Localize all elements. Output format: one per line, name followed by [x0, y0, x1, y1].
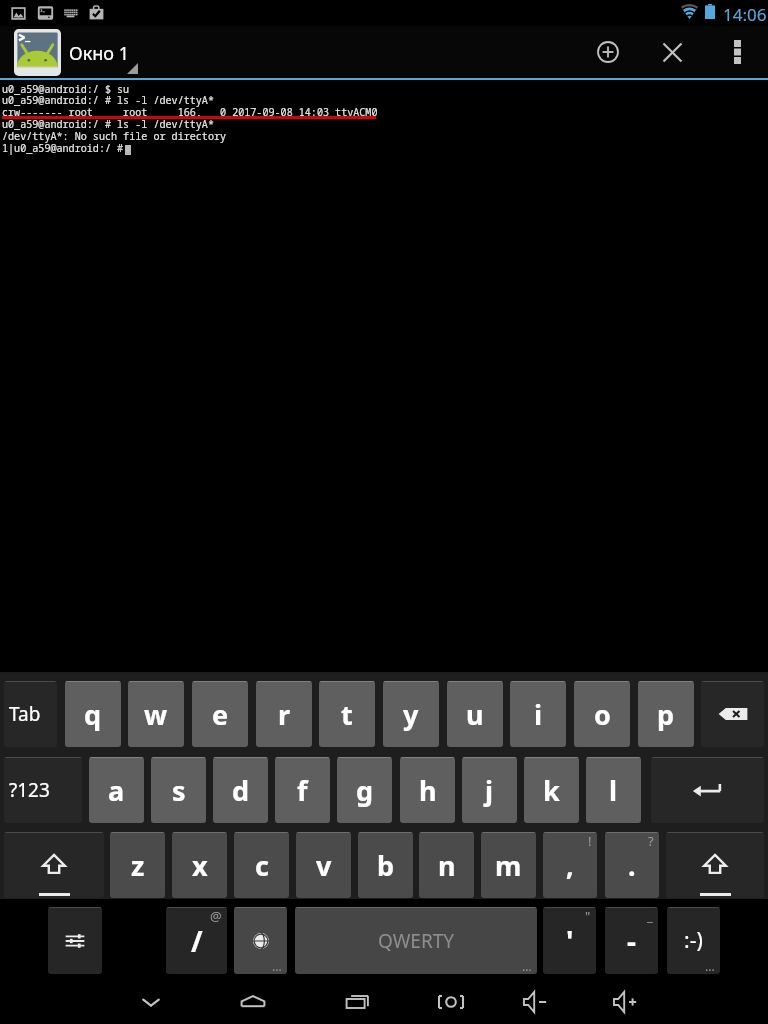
staticText: m — [495, 847, 522, 884]
staticText: l — [609, 772, 618, 809]
staticText: ? — [648, 832, 654, 850]
staticText: p — [657, 696, 675, 733]
button[interactable]: d — [213, 757, 268, 823]
button[interactable]: Volume down — [502, 980, 570, 1024]
button[interactable]: . — [605, 832, 659, 898]
staticText: z — [131, 847, 145, 884]
staticText: j — [485, 772, 494, 809]
button[interactable]: j — [462, 757, 517, 823]
button[interactable]: t — [319, 681, 375, 747]
button[interactable]: shift — [4, 832, 104, 898]
button[interactable]: a — [89, 757, 144, 823]
button[interactable]: h — [400, 757, 455, 823]
staticText: f — [297, 772, 308, 809]
staticText: x — [192, 847, 208, 884]
staticText: ' — [566, 922, 574, 960]
button[interactable]: r — [256, 681, 312, 747]
button[interactable]: New window — [580, 26, 636, 78]
staticText: 14:06 — [723, 3, 767, 26]
button[interactable]: :-) — [667, 907, 720, 974]
staticText: ! — [588, 832, 592, 850]
staticText: t — [341, 696, 353, 733]
button[interactable]: c — [234, 832, 289, 898]
button[interactable]: Recents — [324, 980, 392, 1024]
staticText: QWERTY — [378, 928, 455, 954]
staticText: q — [84, 696, 102, 733]
staticText: ... — [705, 958, 715, 974]
button[interactable]: v — [296, 832, 351, 898]
staticText: v — [316, 847, 332, 884]
staticText: @ — [210, 907, 222, 925]
staticText: w — [144, 696, 168, 733]
button[interactable]: ' — [543, 907, 596, 974]
staticText: ... — [522, 958, 532, 974]
button[interactable]: n — [419, 832, 474, 898]
button[interactable]: Close window — [644, 26, 700, 78]
button[interactable]: u0_a59@android:/ $ su u0_a59@android:/ #… — [0, 80, 768, 672]
button[interactable]: - — [605, 907, 658, 974]
staticText: / — [191, 922, 203, 960]
button[interactable]: w — [128, 681, 184, 747]
staticText: d — [232, 772, 250, 809]
button[interactable]: del — [701, 681, 764, 747]
button[interactable]: i — [510, 681, 566, 747]
button[interactable]: k — [524, 757, 579, 823]
staticText: r — [278, 696, 291, 733]
button[interactable]: QWERTY — [295, 907, 537, 974]
staticText: ?123 — [9, 777, 50, 803]
button[interactable]: Tab — [4, 681, 57, 747]
staticText: y — [403, 696, 419, 733]
button[interactable]: g — [337, 757, 392, 823]
button[interactable]: ?123 — [4, 757, 82, 823]
button[interactable]: , — [543, 832, 597, 898]
staticText: h — [419, 772, 437, 809]
staticText: - — [627, 922, 636, 960]
button[interactable]: u — [447, 681, 503, 747]
staticText: s — [172, 772, 186, 809]
staticText: u0_a59@android:/ $ su u0_a59@android:/ #… — [2, 82, 378, 155]
staticText: :-) — [684, 926, 703, 955]
staticText: Окно 1 — [69, 41, 129, 66]
staticText: Tab — [9, 701, 41, 727]
button[interactable]: enter — [651, 757, 764, 823]
button[interactable]: b — [358, 832, 413, 898]
staticText: i — [534, 696, 543, 733]
button[interactable]: shift — [666, 832, 764, 898]
button[interactable]: f — [275, 757, 330, 823]
button[interactable]: More options — [710, 26, 764, 78]
staticText: b — [377, 847, 395, 884]
button[interactable]: s — [151, 757, 206, 823]
staticText: c — [255, 847, 269, 884]
button[interactable]: p — [638, 681, 694, 747]
button[interactable]: e — [192, 681, 248, 747]
staticText: " — [585, 907, 591, 925]
staticText: a — [108, 772, 125, 809]
staticText: e — [212, 696, 229, 733]
button[interactable]: / — [166, 907, 227, 974]
staticText: g — [356, 772, 374, 809]
button[interactable]: q — [65, 681, 121, 747]
staticText: _ — [647, 907, 653, 925]
button[interactable]: globe — [234, 907, 287, 974]
button[interactable]: Home — [219, 980, 287, 1024]
button[interactable]: m — [481, 832, 536, 898]
button[interactable]: z — [110, 832, 165, 898]
button[interactable]: l — [586, 757, 641, 823]
staticText: n — [438, 847, 456, 884]
button[interactable]: x — [172, 832, 227, 898]
staticText: o — [594, 696, 611, 733]
staticText: . — [628, 847, 636, 884]
button[interactable]: Volume up — [592, 980, 660, 1024]
button[interactable]: App icon — [14, 29, 61, 76]
button[interactable]: settings — [48, 907, 102, 974]
staticText: u — [466, 696, 484, 733]
button[interactable]: Hide keyboard — [117, 980, 185, 1024]
button[interactable]: y — [383, 681, 439, 747]
staticText: ... — [272, 958, 282, 974]
staticText: k — [543, 772, 560, 809]
button[interactable]: o — [574, 681, 630, 747]
button[interactable]: Окно 1 — [69, 26, 149, 78]
staticText: , — [566, 847, 574, 884]
button[interactable]: Screenshot — [417, 980, 485, 1024]
